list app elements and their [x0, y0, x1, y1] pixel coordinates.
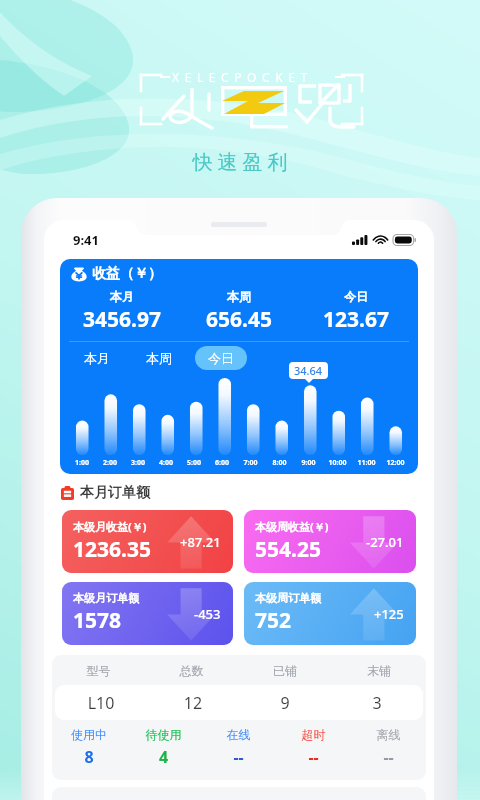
staticText: 超时: [276, 727, 351, 742]
staticText: 34.64: [294, 363, 323, 378]
staticText: 12: [147, 692, 239, 714]
staticText: 9:00: [294, 458, 323, 468]
staticText: 7:00: [236, 458, 265, 468]
staticText: 656.45: [206, 305, 272, 334]
staticText: 554.25: [255, 535, 321, 564]
staticText: 总数: [145, 663, 238, 678]
staticText: 1578: [73, 606, 122, 635]
staticText: 1:00: [68, 458, 96, 468]
staticText: 今日: [344, 289, 368, 304]
staticText: 4: [126, 746, 201, 768]
staticText: 本月: [84, 350, 110, 366]
staticText: 752: [255, 606, 292, 635]
staticText: 待使用: [126, 727, 201, 742]
staticText: 收益（￥）: [92, 265, 162, 283]
staticText: 已铺: [238, 663, 332, 678]
staticText: XELECPOCKET: [172, 69, 313, 85]
staticText: 末铺: [332, 663, 426, 678]
staticText: 8:00: [265, 458, 294, 468]
staticText: L10: [55, 692, 147, 714]
staticText: 10:00: [323, 458, 352, 468]
staticText: 9:41: [73, 231, 99, 249]
staticText: 本级月订单额: [73, 591, 139, 605]
staticText: +125: [374, 605, 404, 623]
button[interactable]: 本周: [133, 346, 185, 370]
staticText: 今日: [208, 350, 234, 366]
button[interactable]: 本级周收益(￥): [244, 510, 416, 573]
button[interactable]: 本级月收益(￥): [62, 510, 233, 573]
staticText: 本级周收益(￥): [255, 519, 329, 534]
staticText: 在线: [201, 727, 276, 742]
staticText: 8: [52, 746, 126, 768]
staticText: 型号: [52, 663, 145, 678]
staticText: 3:00: [124, 458, 152, 468]
staticText: 本周: [227, 289, 251, 304]
staticText: 本月订单额: [80, 484, 150, 502]
staticText: 3456.97: [83, 305, 161, 334]
staticText: 2:00: [96, 458, 124, 468]
staticText: 本级周订单额: [255, 591, 321, 605]
staticText: --: [201, 746, 276, 768]
button[interactable]: 本级月订单额: [62, 582, 233, 645]
staticText: 本月: [110, 289, 134, 304]
staticText: 使用中: [52, 727, 126, 742]
staticText: 11:00: [352, 458, 381, 468]
staticText: +87.21: [180, 533, 221, 551]
staticText: 3: [331, 692, 423, 714]
staticText: 1236.35: [73, 535, 151, 564]
staticText: --: [276, 746, 351, 768]
staticText: 123.67: [323, 305, 389, 334]
staticText: 9: [239, 692, 331, 714]
button[interactable]: 本级周订单额: [244, 582, 416, 645]
staticText: 4:00: [152, 458, 180, 468]
staticText: -27.01: [366, 533, 404, 551]
staticText: 5:00: [180, 458, 208, 468]
staticText: -453: [194, 605, 221, 623]
button[interactable]: 今日: [195, 346, 247, 370]
staticText: 12:00: [381, 458, 410, 468]
button[interactable]: 本月: [71, 346, 123, 370]
staticText: 快速盈利: [190, 150, 290, 175]
staticText: 本周: [146, 350, 172, 366]
staticText: 6:00: [208, 458, 236, 468]
staticText: --: [351, 746, 426, 768]
staticText: 离线: [351, 727, 426, 742]
staticText: 本级月收益(￥): [73, 519, 147, 534]
